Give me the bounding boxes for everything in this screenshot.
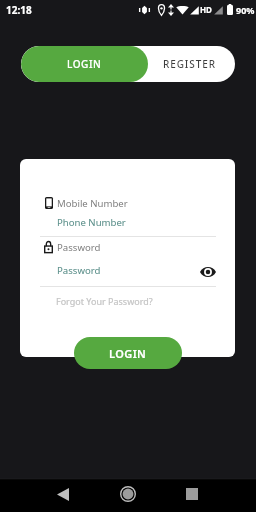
staticText: 90% (236, 4, 255, 16)
staticText: Mobile Number (57, 197, 128, 210)
button[interactable]: Show password (198, 262, 218, 282)
staticText: Password (57, 264, 101, 277)
button[interactable]: Recents (176, 478, 208, 510)
button[interactable]: Forgot Your Password? (56, 295, 153, 307)
staticText: LOGIN (109, 346, 147, 361)
button[interactable]: REGISTER (146, 46, 233, 82)
button[interactable]: LOGIN (21, 46, 148, 82)
staticText: 12:18 (6, 3, 32, 17)
button[interactable]: Phone Number (40, 213, 216, 236)
staticText: HD (200, 4, 212, 15)
staticText: REGISTER (163, 57, 216, 71)
button[interactable]: LOGIN (74, 337, 182, 369)
staticText: Password (57, 241, 101, 254)
staticText: LOGIN (67, 57, 102, 71)
button[interactable]: Password (40, 261, 190, 286)
staticText: Phone Number (57, 216, 126, 229)
button[interactable]: Back (47, 478, 79, 510)
button[interactable]: Home (112, 478, 144, 510)
